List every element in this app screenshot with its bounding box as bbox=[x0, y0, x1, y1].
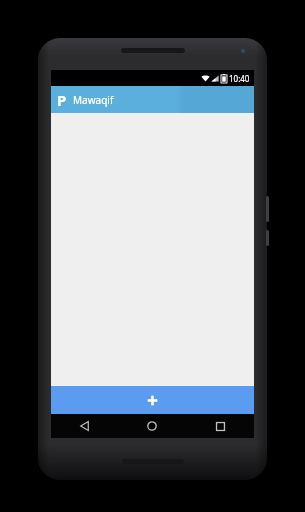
button[interactable]: Back bbox=[51, 414, 118, 438]
button[interactable]: P bbox=[51, 86, 254, 113]
staticText: Mawaqif bbox=[73, 93, 114, 107]
staticText: P bbox=[57, 90, 67, 110]
button[interactable]: Add parking spot bbox=[51, 386, 254, 414]
staticText: 10:40 bbox=[229, 73, 250, 84]
button[interactable]: Recent apps bbox=[186, 414, 254, 438]
button[interactable]: Home bbox=[118, 414, 186, 438]
